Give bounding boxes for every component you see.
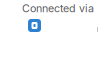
button[interactable]: Connected device	[28, 19, 41, 32]
staticText: Connected via	[22, 2, 94, 15]
